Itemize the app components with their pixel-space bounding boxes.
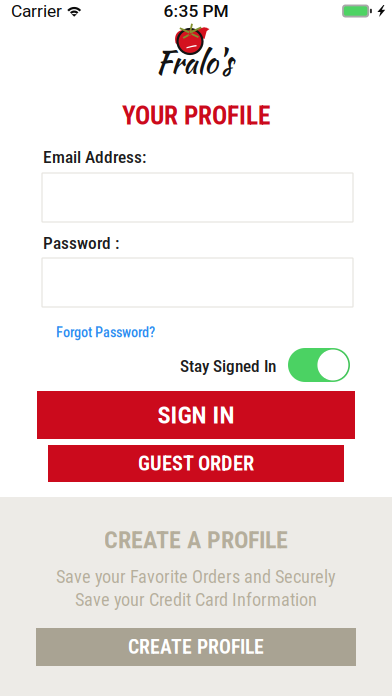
staticText: Save your Credit Card Information (75, 589, 317, 610)
staticText: GUEST ORDER (138, 451, 254, 475)
staticText: Fralo's (155, 40, 233, 84)
staticText: Save your Favorite Orders and Securely (56, 566, 336, 587)
staticText: YOUR PROFILE (122, 101, 270, 131)
button[interactable]: SIGN IN (37, 391, 355, 439)
staticText: Stay Signed In (180, 356, 276, 376)
button[interactable]: Stay Signed In (288, 348, 350, 382)
button[interactable]: CREATE PROFILE (36, 628, 356, 666)
staticText: 6:35 PM (163, 1, 228, 21)
staticText: CREATE PROFILE (128, 635, 264, 658)
staticText: Carrier (11, 1, 62, 21)
staticText: Forgot Password? (56, 324, 155, 341)
staticText: SIGN IN (157, 401, 234, 429)
staticText: CREATE A PROFILE (104, 526, 288, 554)
staticText: Email Address: (43, 147, 146, 167)
button[interactable]: Forgot Password? (56, 324, 155, 341)
staticText: Password : (43, 233, 119, 253)
button[interactable]: GUEST ORDER (48, 445, 344, 482)
